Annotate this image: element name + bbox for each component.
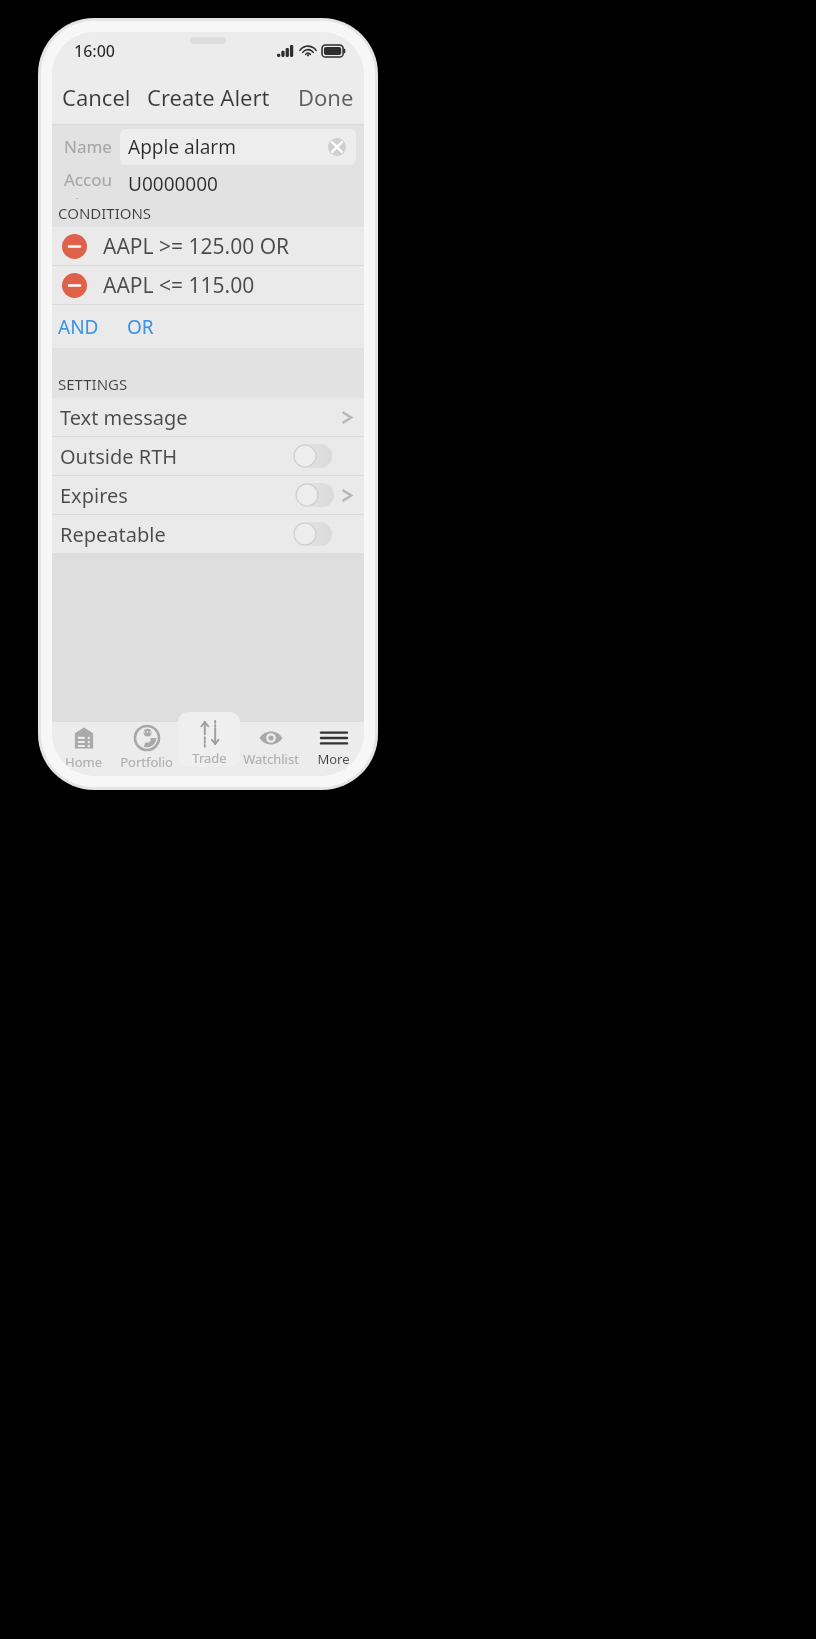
button[interactable]: Name xyxy=(52,125,364,168)
button[interactable]: Expires xyxy=(295,483,334,507)
staticText: Text message xyxy=(60,404,342,431)
button[interactable]: Expires xyxy=(52,476,364,514)
staticText: U0000000 xyxy=(128,171,218,197)
staticText: 16:00 xyxy=(74,40,115,62)
button[interactable]: Outside RTH xyxy=(293,444,332,468)
staticText: Account xyxy=(64,168,120,199)
staticText: Name xyxy=(64,135,120,158)
staticText: AAPL <= 115.00 xyxy=(103,271,255,300)
button[interactable]: Portfolio xyxy=(120,721,173,776)
staticText: Portfolio xyxy=(120,753,173,771)
button[interactable]: Account xyxy=(52,168,364,199)
button[interactable]: Repeatable xyxy=(52,515,364,553)
staticText: Done xyxy=(298,82,354,112)
staticText: Create Alert xyxy=(147,82,270,112)
button[interactable]: Trade xyxy=(192,721,227,776)
button[interactable]: AND xyxy=(52,308,105,346)
staticText: CONDITIONS xyxy=(58,203,152,223)
button[interactable]: Done xyxy=(288,74,364,120)
staticText: Home xyxy=(65,753,102,771)
button[interactable]: Remove condition xyxy=(52,227,364,265)
staticText: Watchlist xyxy=(243,750,299,768)
staticText: More xyxy=(317,750,350,768)
staticText: Apple alarm xyxy=(128,134,236,160)
button[interactable]: Home xyxy=(65,721,102,776)
staticText: Outside RTH xyxy=(60,443,293,470)
button[interactable]: Watchlist xyxy=(243,721,299,776)
staticText: Expires xyxy=(60,482,295,509)
button[interactable]: Remove condition xyxy=(62,234,87,259)
staticText: Repeatable xyxy=(60,521,293,548)
staticText: SETTINGS xyxy=(58,374,128,394)
staticText: OR xyxy=(127,314,154,340)
button[interactable]: OR xyxy=(121,308,160,346)
button[interactable]: Outside RTH xyxy=(52,437,364,475)
button[interactable]: Remove condition xyxy=(52,266,364,304)
button[interactable]: Clear name xyxy=(326,136,348,158)
staticText: Cancel xyxy=(62,82,131,112)
staticText: AAPL >= 125.00 OR xyxy=(103,232,290,261)
button[interactable]: Remove condition xyxy=(62,273,87,298)
button[interactable]: Cancel xyxy=(52,74,141,120)
staticText: AND xyxy=(58,314,99,340)
button[interactable]: More xyxy=(317,721,350,776)
button[interactable]: Text message xyxy=(52,398,364,436)
staticText: Trade xyxy=(192,749,227,767)
button[interactable]: Repeatable xyxy=(293,522,332,546)
